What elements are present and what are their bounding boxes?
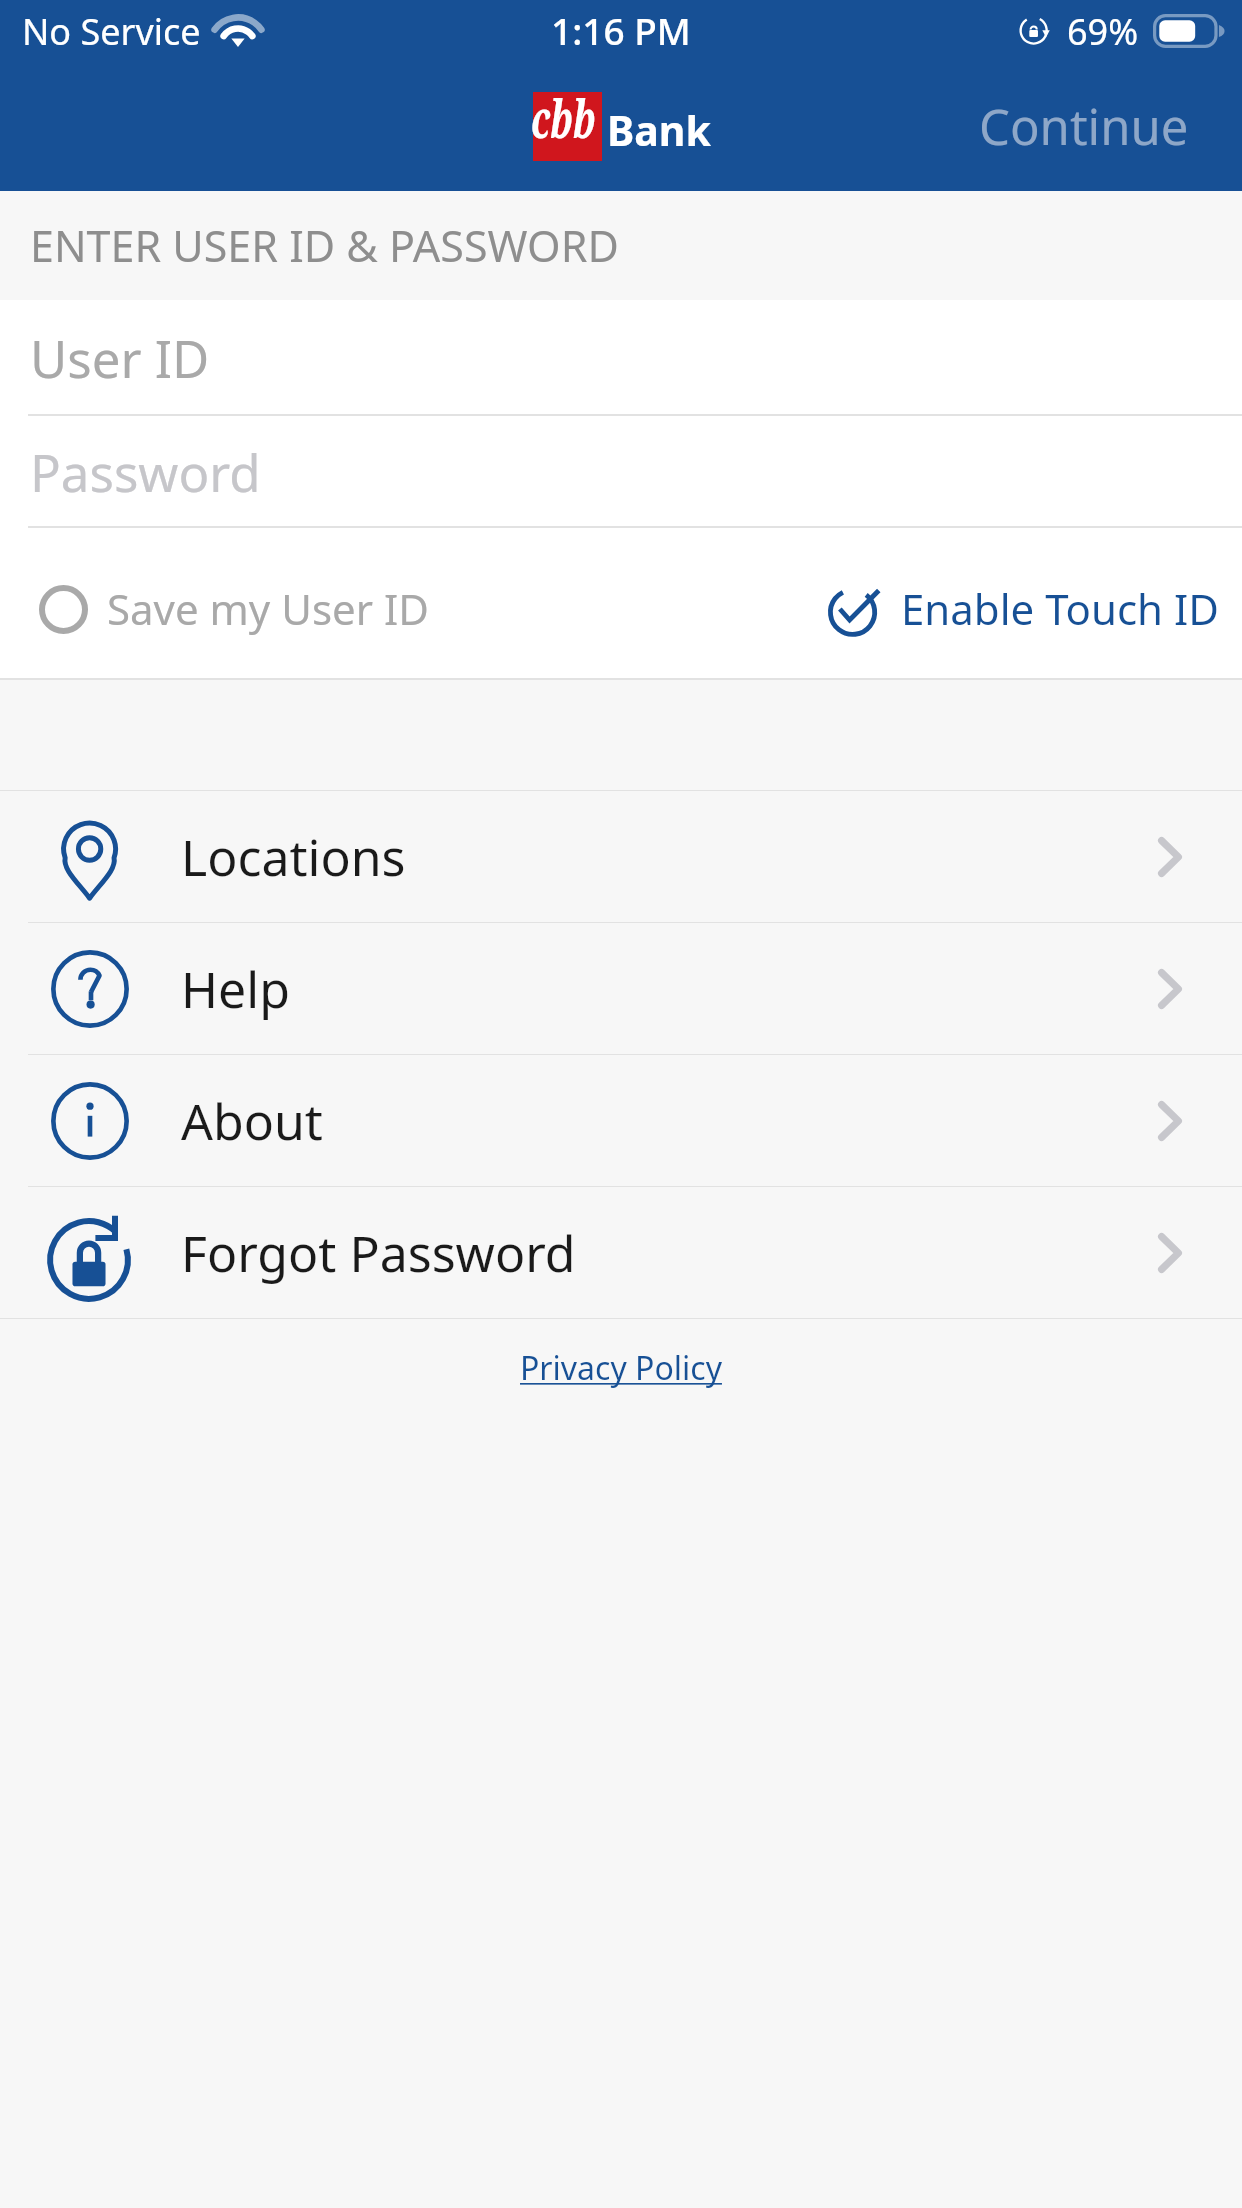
staticText: No Service [22,7,201,56]
staticText: Forgot Password [181,1219,576,1287]
staticText: ENTER USER ID & PASSWORD [30,216,619,275]
staticText: Help [181,955,290,1023]
staticText: cbb [531,82,596,153]
staticText: Continue [979,93,1189,160]
staticText: Privacy Policy [520,1346,722,1390]
button[interactable]: Continue [939,73,1242,180]
staticText: 1:16 PM [551,5,691,55]
other: Wi-Fi signal [215,15,261,46]
staticText: Enable Touch ID [901,580,1219,637]
staticText: Locations [181,823,406,891]
button[interactable]: Help [0,923,1242,1054]
staticText: Bank [607,102,711,158]
staticText: Save my User ID [107,580,429,637]
staticText: User ID [30,323,210,392]
other: Rotation lock [1020,15,1051,46]
button[interactable]: About [0,1055,1242,1186]
button[interactable]: Locations [0,791,1242,922]
other: Battery 69 percent [1153,14,1226,48]
button[interactable]: Forgot Password [0,1187,1242,1318]
staticText: 69% [1067,7,1139,56]
button[interactable]: Privacy Policy [504,1326,738,1402]
button[interactable]: Save my User ID [39,580,429,639]
staticText: Password [30,437,261,506]
staticText: About [181,1087,323,1155]
button[interactable]: Enable Touch ID [828,580,1219,639]
